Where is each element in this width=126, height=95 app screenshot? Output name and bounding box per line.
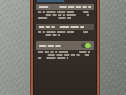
button[interactable]: Toggle setting bbox=[81, 43, 91, 48]
button[interactable]: Toggle setting bbox=[36, 41, 94, 50]
button[interactable] bbox=[36, 4, 94, 10]
button[interactable] bbox=[36, 24, 94, 30]
